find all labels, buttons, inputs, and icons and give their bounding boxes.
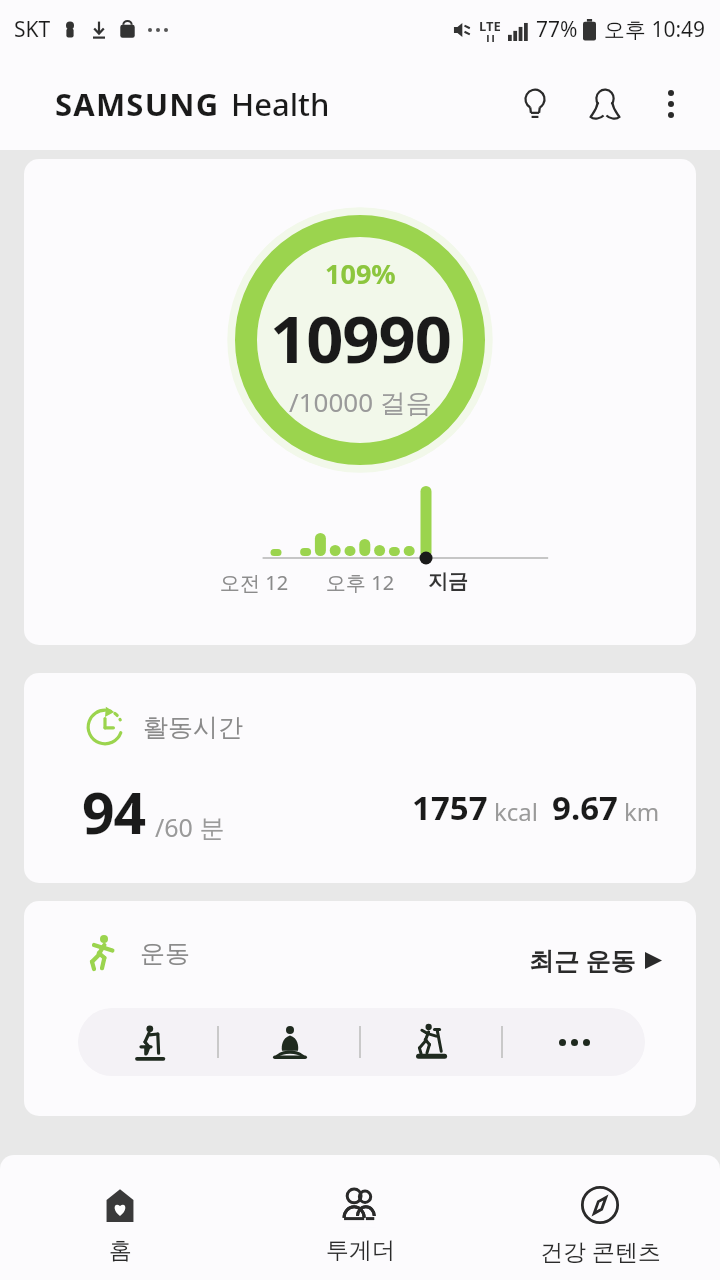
staticText: 지금 (428, 569, 468, 594)
button[interactable]: 109% (24, 159, 696, 645)
button[interactable]: 운동 (24, 901, 696, 1116)
button[interactable]: More exercises (503, 1008, 645, 1076)
button[interactable]: Cycling (78, 1008, 219, 1076)
staticText: 9.67 (552, 785, 618, 830)
staticText: kcal (494, 795, 538, 828)
staticText: 활동시간 (143, 712, 243, 743)
staticText: LTE (479, 17, 501, 35)
staticText: 77% (536, 15, 578, 44)
button[interactable]: 투게더 (240, 1169, 480, 1280)
button[interactable]: Profile (578, 77, 632, 131)
staticText: 오전 12 (220, 569, 289, 596)
button[interactable]: 최근 운동 (529, 943, 662, 977)
staticText: /10000 걸음 (289, 384, 432, 420)
staticText: 투게더 (326, 1236, 395, 1265)
staticText: 109% (325, 255, 396, 292)
staticText: 홈 (109, 1236, 132, 1265)
staticText: 94 (82, 773, 146, 851)
button[interactable]: 홈 (0, 1169, 240, 1280)
staticText: SKT (14, 15, 51, 44)
staticText: 오후 12 (326, 569, 395, 596)
staticText: 오후 10:49 (604, 15, 706, 44)
staticText: Health (231, 83, 330, 125)
staticText: 운동 (140, 938, 190, 969)
button[interactable]: Yoga (219, 1008, 361, 1076)
button[interactable]: Tips (508, 77, 562, 131)
button[interactable]: More options (646, 79, 696, 129)
staticText: 10990 (270, 294, 451, 383)
staticText: 1757 (412, 785, 488, 830)
staticText: /60 분 (155, 810, 225, 844)
button[interactable]: 활동시간 (24, 673, 696, 883)
staticText: km (624, 795, 660, 828)
staticText: 건강 콘텐츠 (540, 1235, 661, 1266)
button[interactable]: Treadmill (361, 1008, 503, 1076)
staticText: SAMSUNG (55, 83, 220, 125)
button[interactable]: 건강 콘텐츠 (480, 1169, 720, 1280)
staticText: 최근 운동 (529, 943, 636, 977)
